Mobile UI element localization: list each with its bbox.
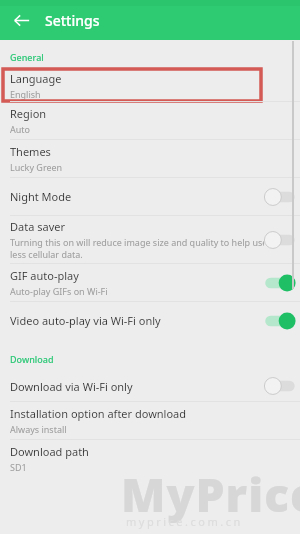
- staticText: Download path: [10, 444, 89, 459]
- button[interactable]: Download via Wi-Fi only: [0, 371, 300, 401]
- staticText: MyPrice: [121, 463, 300, 526]
- staticText: Settings: [45, 11, 100, 30]
- button[interactable]: Data saver: [0, 216, 300, 263]
- staticText: Auto: [10, 123, 31, 135]
- button[interactable]: Installation option after download: [0, 402, 300, 439]
- staticText: Turning this on will reduce image size a…: [10, 236, 264, 248]
- staticText: Lucky Green: [10, 161, 63, 173]
- button[interactable]: Video auto-play via Wi-Fi only: [0, 302, 300, 339]
- button[interactable]: Night Mode: [0, 178, 300, 215]
- staticText: Data saver: [10, 219, 65, 234]
- staticText: Region: [10, 106, 47, 121]
- button[interactable]: Turn off: [264, 312, 296, 330]
- button[interactable]: Turn off: [264, 274, 296, 292]
- staticText: English: [10, 88, 41, 100]
- button[interactable]: Themes: [0, 140, 300, 177]
- button[interactable]: Navigate back: [9, 8, 33, 32]
- button[interactable]: Language: [0, 69, 300, 101]
- staticText: Night Mode: [10, 189, 72, 204]
- staticText: Auto-play GIFs on Wi-Fi: [10, 285, 108, 297]
- button[interactable]: Turn on: [264, 188, 296, 206]
- staticText: less cellular data.: [10, 248, 83, 260]
- button[interactable]: Region: [0, 102, 300, 139]
- staticText: Video auto-play via Wi-Fi only: [10, 313, 161, 328]
- staticText: Themes: [10, 144, 51, 159]
- button[interactable]: Turn on: [264, 377, 296, 395]
- staticText: Download: [10, 353, 54, 365]
- staticText: myprice.com.cn: [126, 514, 243, 529]
- staticText: General: [10, 51, 44, 63]
- staticText: Always install: [10, 423, 67, 435]
- button[interactable]: GIF auto-play: [0, 264, 300, 301]
- staticText: SD1: [10, 461, 27, 473]
- button[interactable]: Download path: [0, 440, 300, 477]
- button[interactable]: Turn on: [264, 231, 296, 249]
- staticText: Installation option after download: [10, 406, 187, 421]
- staticText: GIF auto-play: [10, 268, 79, 283]
- staticText: Download via Wi-Fi only: [10, 379, 133, 394]
- staticText: Language: [10, 71, 62, 86]
